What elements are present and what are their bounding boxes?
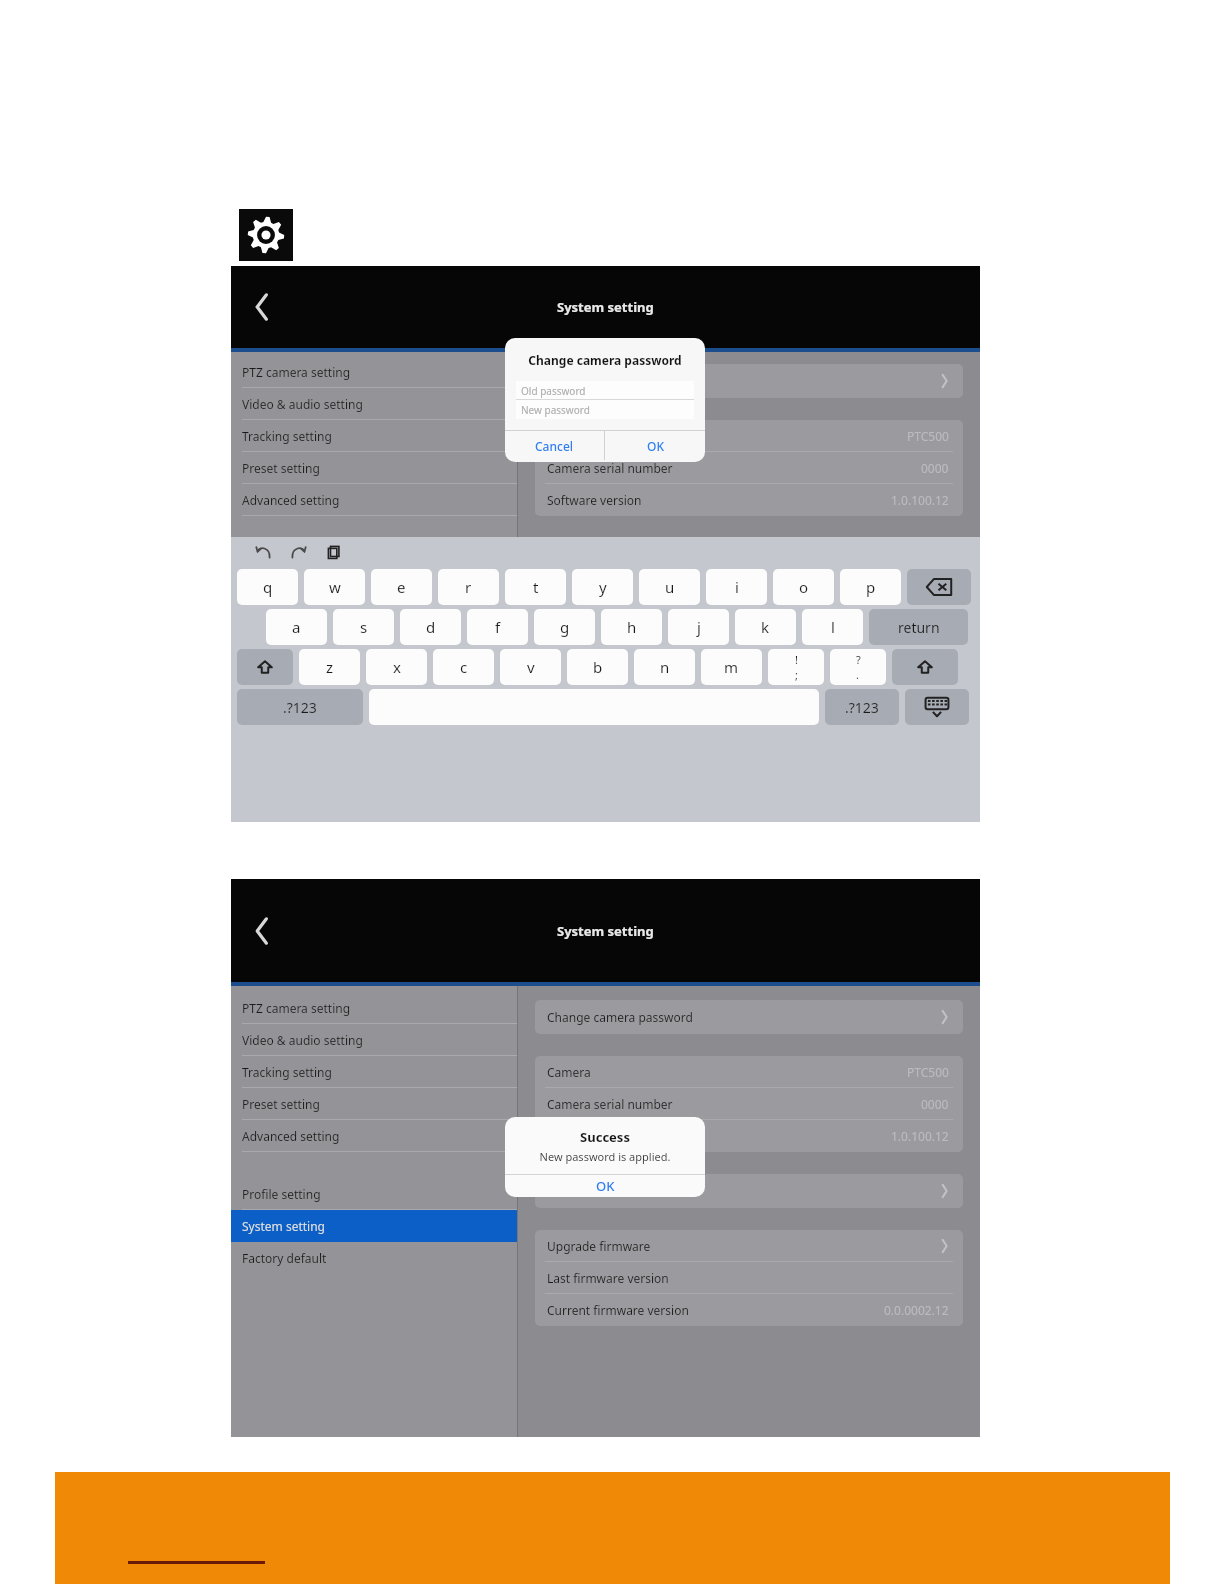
button[interactable] bbox=[535, 1174, 963, 1208]
button[interactable]: v bbox=[500, 649, 561, 685]
staticText: Software version bbox=[547, 1128, 642, 1144]
button[interactable]: w bbox=[304, 569, 365, 605]
staticText: g bbox=[560, 617, 570, 637]
button[interactable]: Advanced setting bbox=[231, 484, 517, 516]
staticText: z bbox=[326, 657, 334, 677]
button[interactable]: OK bbox=[505, 1175, 705, 1197]
staticText: .?123 bbox=[845, 698, 879, 717]
staticText: s bbox=[360, 617, 368, 637]
button[interactable]: Shift bbox=[892, 649, 958, 685]
button[interactable]: ? . bbox=[830, 649, 886, 685]
button[interactable]: Old password bbox=[516, 381, 694, 400]
button[interactable]: Shift bbox=[237, 649, 293, 685]
button[interactable]: r bbox=[438, 569, 499, 605]
button[interactable]: h bbox=[601, 609, 662, 645]
button[interactable]: OK bbox=[605, 431, 705, 460]
button[interactable]: Settings bbox=[239, 209, 293, 261]
button[interactable]: Camera serial number bbox=[535, 1088, 963, 1120]
button[interactable]: k bbox=[735, 609, 796, 645]
button[interactable]: j bbox=[668, 609, 729, 645]
button[interactable]: Preset setting bbox=[231, 1088, 517, 1120]
button[interactable]: u bbox=[639, 569, 700, 605]
staticText: New password is applied. bbox=[505, 1149, 705, 1164]
button[interactable]: Camera serial number bbox=[535, 452, 963, 484]
staticText: 1.0.100.12 bbox=[891, 1128, 949, 1144]
button[interactable]: Video & audio setting bbox=[231, 1024, 517, 1056]
button[interactable]: x bbox=[366, 649, 427, 685]
button[interactable]: Upgrade firmware bbox=[535, 1230, 963, 1262]
button[interactable]: d bbox=[400, 609, 461, 645]
button[interactable]: Back bbox=[245, 287, 279, 327]
staticText: 0.0.0002.12 bbox=[884, 1302, 949, 1318]
button[interactable]: Advanced setting bbox=[231, 1120, 517, 1152]
button[interactable]: q bbox=[237, 569, 298, 605]
button[interactable]: c bbox=[433, 649, 494, 685]
button[interactable]: Software version bbox=[535, 484, 963, 516]
button[interactable]: Video & audio setting bbox=[231, 388, 517, 420]
button[interactable]: Camera bbox=[535, 420, 963, 452]
staticText: OK bbox=[647, 438, 664, 454]
button[interactable]: l bbox=[802, 609, 863, 645]
staticText: a bbox=[292, 617, 301, 637]
button[interactable]: Preset setting bbox=[231, 452, 517, 484]
button[interactable]: f bbox=[467, 609, 528, 645]
button[interactable]: Cancel bbox=[505, 431, 604, 460]
button[interactable]: Tracking setting bbox=[231, 420, 517, 452]
staticText: r bbox=[465, 577, 472, 597]
staticText: Camera serial number bbox=[547, 460, 673, 476]
button[interactable]: Software version bbox=[535, 1120, 963, 1152]
staticText: Advanced setting bbox=[242, 492, 340, 508]
button[interactable]: PTZ camera setting bbox=[231, 356, 517, 388]
staticText: PTZ camera setting bbox=[242, 364, 351, 380]
button[interactable]: i bbox=[706, 569, 767, 605]
button[interactable]: t bbox=[505, 569, 566, 605]
button[interactable]: a bbox=[266, 609, 327, 645]
button[interactable]: g bbox=[534, 609, 595, 645]
button[interactable]: Profile setting bbox=[231, 1178, 517, 1210]
staticText: m bbox=[724, 657, 739, 677]
staticText: Change camera password bbox=[505, 352, 705, 368]
staticText: PTC500 bbox=[907, 428, 949, 444]
button[interactable]: Factory default bbox=[231, 1242, 517, 1274]
button[interactable]: p bbox=[840, 569, 901, 605]
button[interactable]: y bbox=[572, 569, 633, 605]
button[interactable]: Paste bbox=[321, 539, 347, 565]
button[interactable]: n bbox=[634, 649, 695, 685]
button[interactable]: return bbox=[869, 609, 968, 645]
staticText: New password bbox=[521, 403, 590, 417]
button[interactable]: Current firmware version bbox=[535, 1294, 963, 1326]
staticText: Advanced setting bbox=[242, 1128, 340, 1144]
button[interactable]: e bbox=[371, 569, 432, 605]
staticText: q bbox=[263, 577, 273, 597]
staticText: n bbox=[660, 657, 670, 677]
button[interactable]: ! ; bbox=[768, 649, 824, 685]
button[interactable]: b bbox=[567, 649, 628, 685]
button[interactable]: Undo bbox=[251, 539, 277, 565]
button[interactable]: Camera bbox=[535, 1056, 963, 1088]
button[interactable]: s bbox=[333, 609, 394, 645]
button[interactable]: .?123 bbox=[237, 689, 363, 725]
button[interactable]: .?123 bbox=[825, 689, 899, 725]
button[interactable]: Redo bbox=[285, 539, 311, 565]
button[interactable]: m bbox=[701, 649, 762, 685]
staticText: u bbox=[665, 577, 675, 597]
staticText: y bbox=[599, 577, 607, 597]
staticText: b bbox=[593, 657, 603, 677]
staticText: h bbox=[627, 617, 637, 637]
button[interactable]: z bbox=[299, 649, 360, 685]
button[interactable]: Backspace bbox=[907, 569, 971, 605]
button[interactable]: Last firmware version bbox=[535, 1262, 963, 1294]
button[interactable]: System setting bbox=[231, 1210, 517, 1242]
button[interactable]: Back bbox=[245, 911, 279, 951]
button[interactable]: Change camera password bbox=[535, 1000, 963, 1034]
button[interactable]: Tracking setting bbox=[231, 1056, 517, 1088]
button[interactable]: New password bbox=[516, 400, 694, 419]
staticText: Preset setting bbox=[242, 1096, 320, 1112]
staticText: Camera bbox=[547, 1064, 591, 1080]
button[interactable]: Hide keyboard bbox=[905, 689, 969, 725]
button[interactable]: o bbox=[773, 569, 834, 605]
button[interactable]: PTZ camera setting bbox=[231, 992, 517, 1024]
button[interactable]: Change camera password bbox=[535, 364, 963, 398]
staticText: v bbox=[527, 657, 535, 677]
